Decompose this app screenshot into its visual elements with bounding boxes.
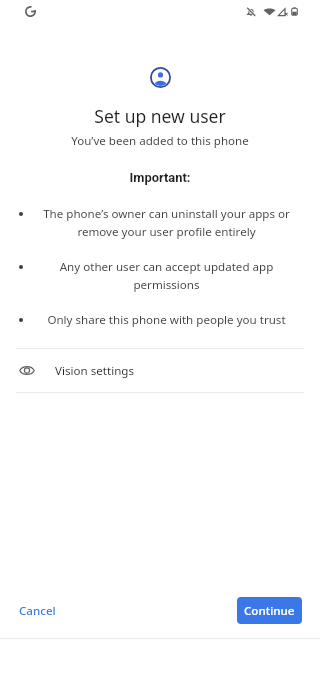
staticText: The phone’s owner can uninstall your app…	[42, 206, 291, 239]
staticText: You’ve been added to this phone	[0, 133, 320, 149]
staticText: Set up new user	[0, 104, 320, 128]
staticText: Continue	[244, 603, 295, 619]
button[interactable]: Cancel	[11, 596, 64, 626]
staticText: Any other user can accept updated app pe…	[42, 259, 291, 292]
staticText: Cancel	[19, 603, 56, 619]
staticText: Vision settings	[55, 363, 134, 379]
other: Google	[25, 6, 36, 17]
staticText: Important:	[0, 170, 320, 185]
staticText: Only share this phone with people you tr…	[42, 312, 291, 328]
button[interactable]: Vision settings	[0, 349, 320, 392]
button[interactable]: Continue	[237, 597, 302, 624]
